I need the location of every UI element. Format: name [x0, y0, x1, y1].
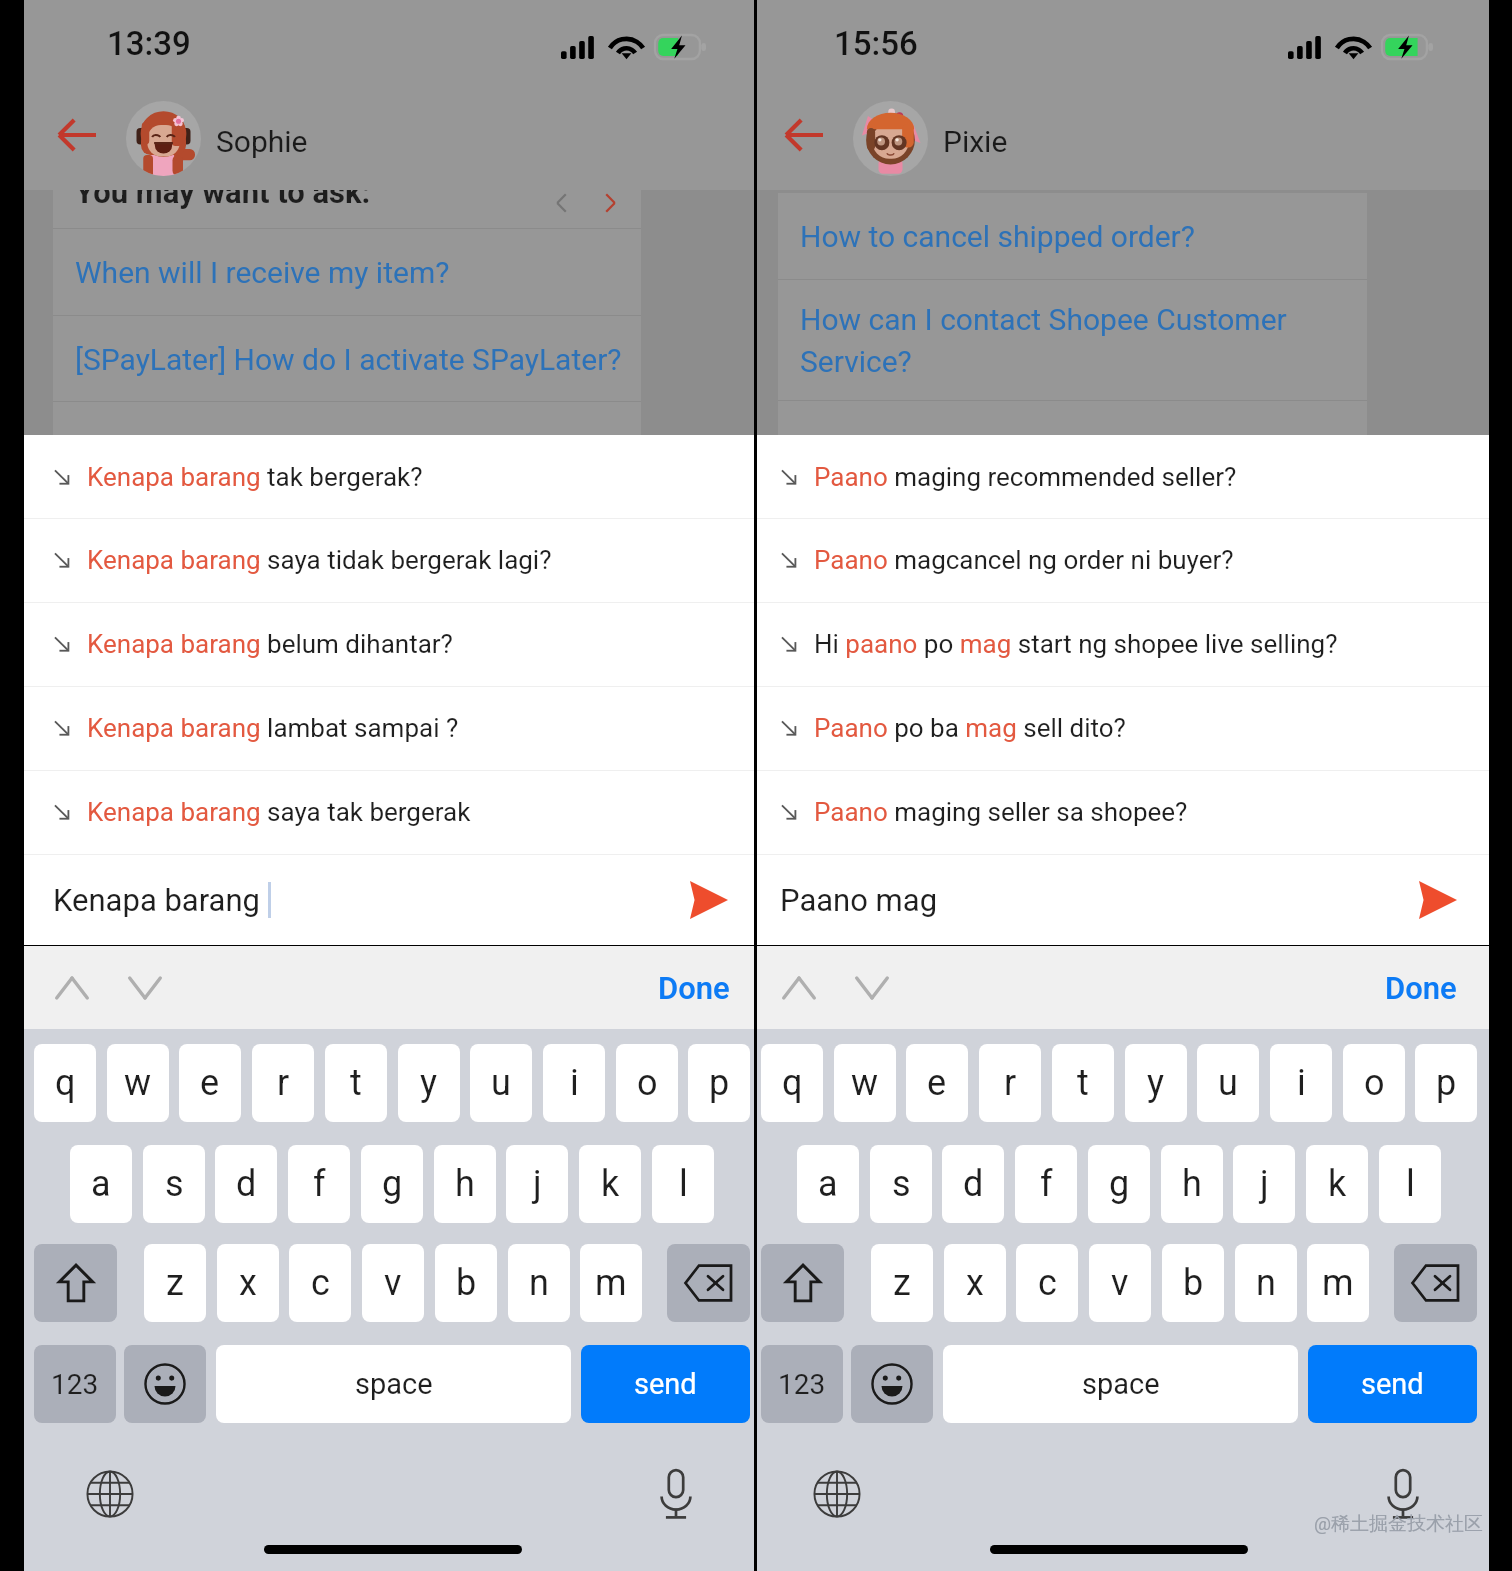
button[interactable]: [SPayLater] How do I activate SPayLater?	[53, 316, 641, 403]
button[interactable]: How to cancel shipped order?	[778, 193, 1367, 279]
button[interactable]: l	[652, 1145, 714, 1223]
button[interactable]: Backspace	[667, 1244, 750, 1322]
button[interactable]: Next field	[112, 946, 178, 1029]
button[interactable]: j	[1233, 1145, 1295, 1223]
button[interactable]: e	[906, 1044, 968, 1122]
button[interactable]: space	[216, 1345, 571, 1423]
button[interactable]: How can I contact Shopee Customer Servic…	[778, 280, 1367, 401]
button[interactable]: w	[107, 1044, 169, 1122]
button[interactable]: l	[1379, 1145, 1441, 1223]
button[interactable]: Paano maging seller sa shopee?	[757, 770, 1489, 854]
staticText: You may want to ask:	[75, 174, 371, 210]
button[interactable]: q	[761, 1044, 823, 1122]
button[interactable]: s	[870, 1145, 932, 1223]
button[interactable]: Hi paano po mag start ng shopee live sel…	[757, 602, 1489, 686]
button[interactable]: s	[143, 1145, 205, 1223]
button[interactable]: m	[1307, 1244, 1369, 1322]
button[interactable]: Back	[763, 97, 843, 173]
button[interactable]: c	[289, 1244, 351, 1322]
button[interactable]: Done	[634, 946, 754, 1029]
button[interactable]: y	[398, 1044, 460, 1122]
button[interactable]: Previous field	[39, 946, 105, 1029]
button[interactable]: p	[1415, 1044, 1477, 1122]
button[interactable]: a	[70, 1145, 132, 1223]
button[interactable]: p	[688, 1044, 750, 1122]
button[interactable]: u	[470, 1044, 532, 1122]
button[interactable]: g	[1088, 1145, 1150, 1223]
button[interactable]: v	[362, 1244, 424, 1322]
button[interactable]: f	[1015, 1145, 1077, 1223]
button[interactable]: o	[616, 1044, 678, 1122]
button[interactable]: send	[1308, 1345, 1477, 1423]
button[interactable]: Dictate	[628, 1459, 724, 1529]
button[interactable]: k	[579, 1145, 641, 1223]
button[interactable]: u	[1197, 1044, 1259, 1122]
staticText: l	[679, 1163, 688, 1205]
button[interactable]: Back	[36, 97, 116, 173]
button[interactable]: Dictate	[1355, 1459, 1451, 1529]
button[interactable]: d	[215, 1145, 277, 1223]
button[interactable]: n	[508, 1244, 570, 1322]
button[interactable]: x	[944, 1244, 1006, 1322]
button[interactable]: z	[144, 1244, 206, 1322]
button[interactable]: 123	[761, 1345, 843, 1423]
button[interactable]: g	[361, 1145, 423, 1223]
button[interactable]: Shift	[34, 1244, 117, 1322]
button[interactable]: Next field	[839, 946, 905, 1029]
button[interactable]: w	[834, 1044, 896, 1122]
button[interactable]: Kenapa barang saya tak bergerak	[24, 770, 754, 854]
button[interactable]: m	[580, 1244, 642, 1322]
button[interactable]: h	[434, 1145, 496, 1223]
button[interactable]: Emoji	[851, 1345, 933, 1423]
button[interactable]: v	[1089, 1244, 1151, 1322]
button[interactable]: z	[871, 1244, 933, 1322]
button[interactable]: Shift	[761, 1244, 844, 1322]
button[interactable]: Previous field	[766, 946, 832, 1029]
button[interactable]: c	[1016, 1244, 1078, 1322]
button[interactable]: b	[435, 1244, 497, 1322]
button[interactable]: When will I receive my item?	[53, 229, 641, 316]
button[interactable]: Done	[1361, 946, 1481, 1029]
staticText: z	[893, 1262, 911, 1304]
staticText: p	[1436, 1062, 1457, 1104]
button[interactable]: Paano magcancel ng order ni buyer?	[757, 518, 1489, 602]
button[interactable]: r	[979, 1044, 1041, 1122]
button[interactable]: Send	[1387, 854, 1489, 945]
button[interactable]: Send	[664, 854, 754, 945]
button[interactable]: t	[325, 1044, 387, 1122]
button[interactable]: Backspace	[1394, 1244, 1477, 1322]
button[interactable]: Kenapa barang belum dihantar?	[24, 602, 754, 686]
button[interactable]: d	[942, 1145, 1004, 1223]
staticText: q	[782, 1062, 803, 1104]
button[interactable]: q	[34, 1044, 96, 1122]
button[interactable]: k	[1306, 1145, 1368, 1223]
button[interactable]: e	[179, 1044, 241, 1122]
button[interactable]: Change keyboard	[789, 1459, 885, 1529]
button[interactable]: 123	[34, 1345, 116, 1423]
button[interactable]: r	[252, 1044, 314, 1122]
button[interactable]: f	[288, 1145, 350, 1223]
button[interactable]: Paano maging recommended seller?	[757, 435, 1489, 518]
button[interactable]: Paano po ba mag sell dito?	[757, 686, 1489, 770]
staticText: f	[313, 1163, 326, 1205]
button[interactable]: y	[1125, 1044, 1187, 1122]
button[interactable]: o	[1343, 1044, 1405, 1122]
button[interactable]: Kenapa barang saya tidak bergerak lagi?	[24, 518, 754, 602]
button[interactable]: x	[217, 1244, 279, 1322]
button[interactable]: Profile	[126, 101, 201, 176]
button[interactable]: Profile	[853, 101, 928, 176]
button[interactable]: h	[1161, 1145, 1223, 1223]
button[interactable]: i	[543, 1044, 605, 1122]
button[interactable]: n	[1235, 1244, 1297, 1322]
button[interactable]: b	[1162, 1244, 1224, 1322]
button[interactable]: Change keyboard	[62, 1459, 158, 1529]
button[interactable]: Kenapa barang lambat sampai ?	[24, 686, 754, 770]
button[interactable]: i	[1270, 1044, 1332, 1122]
button[interactable]: send	[581, 1345, 750, 1423]
button[interactable]: t	[1052, 1044, 1114, 1122]
button[interactable]: a	[797, 1145, 859, 1223]
button[interactable]: j	[506, 1145, 568, 1223]
button[interactable]: Emoji	[124, 1345, 206, 1423]
button[interactable]: space	[943, 1345, 1298, 1423]
button[interactable]: Kenapa barang tak bergerak?	[24, 435, 754, 518]
